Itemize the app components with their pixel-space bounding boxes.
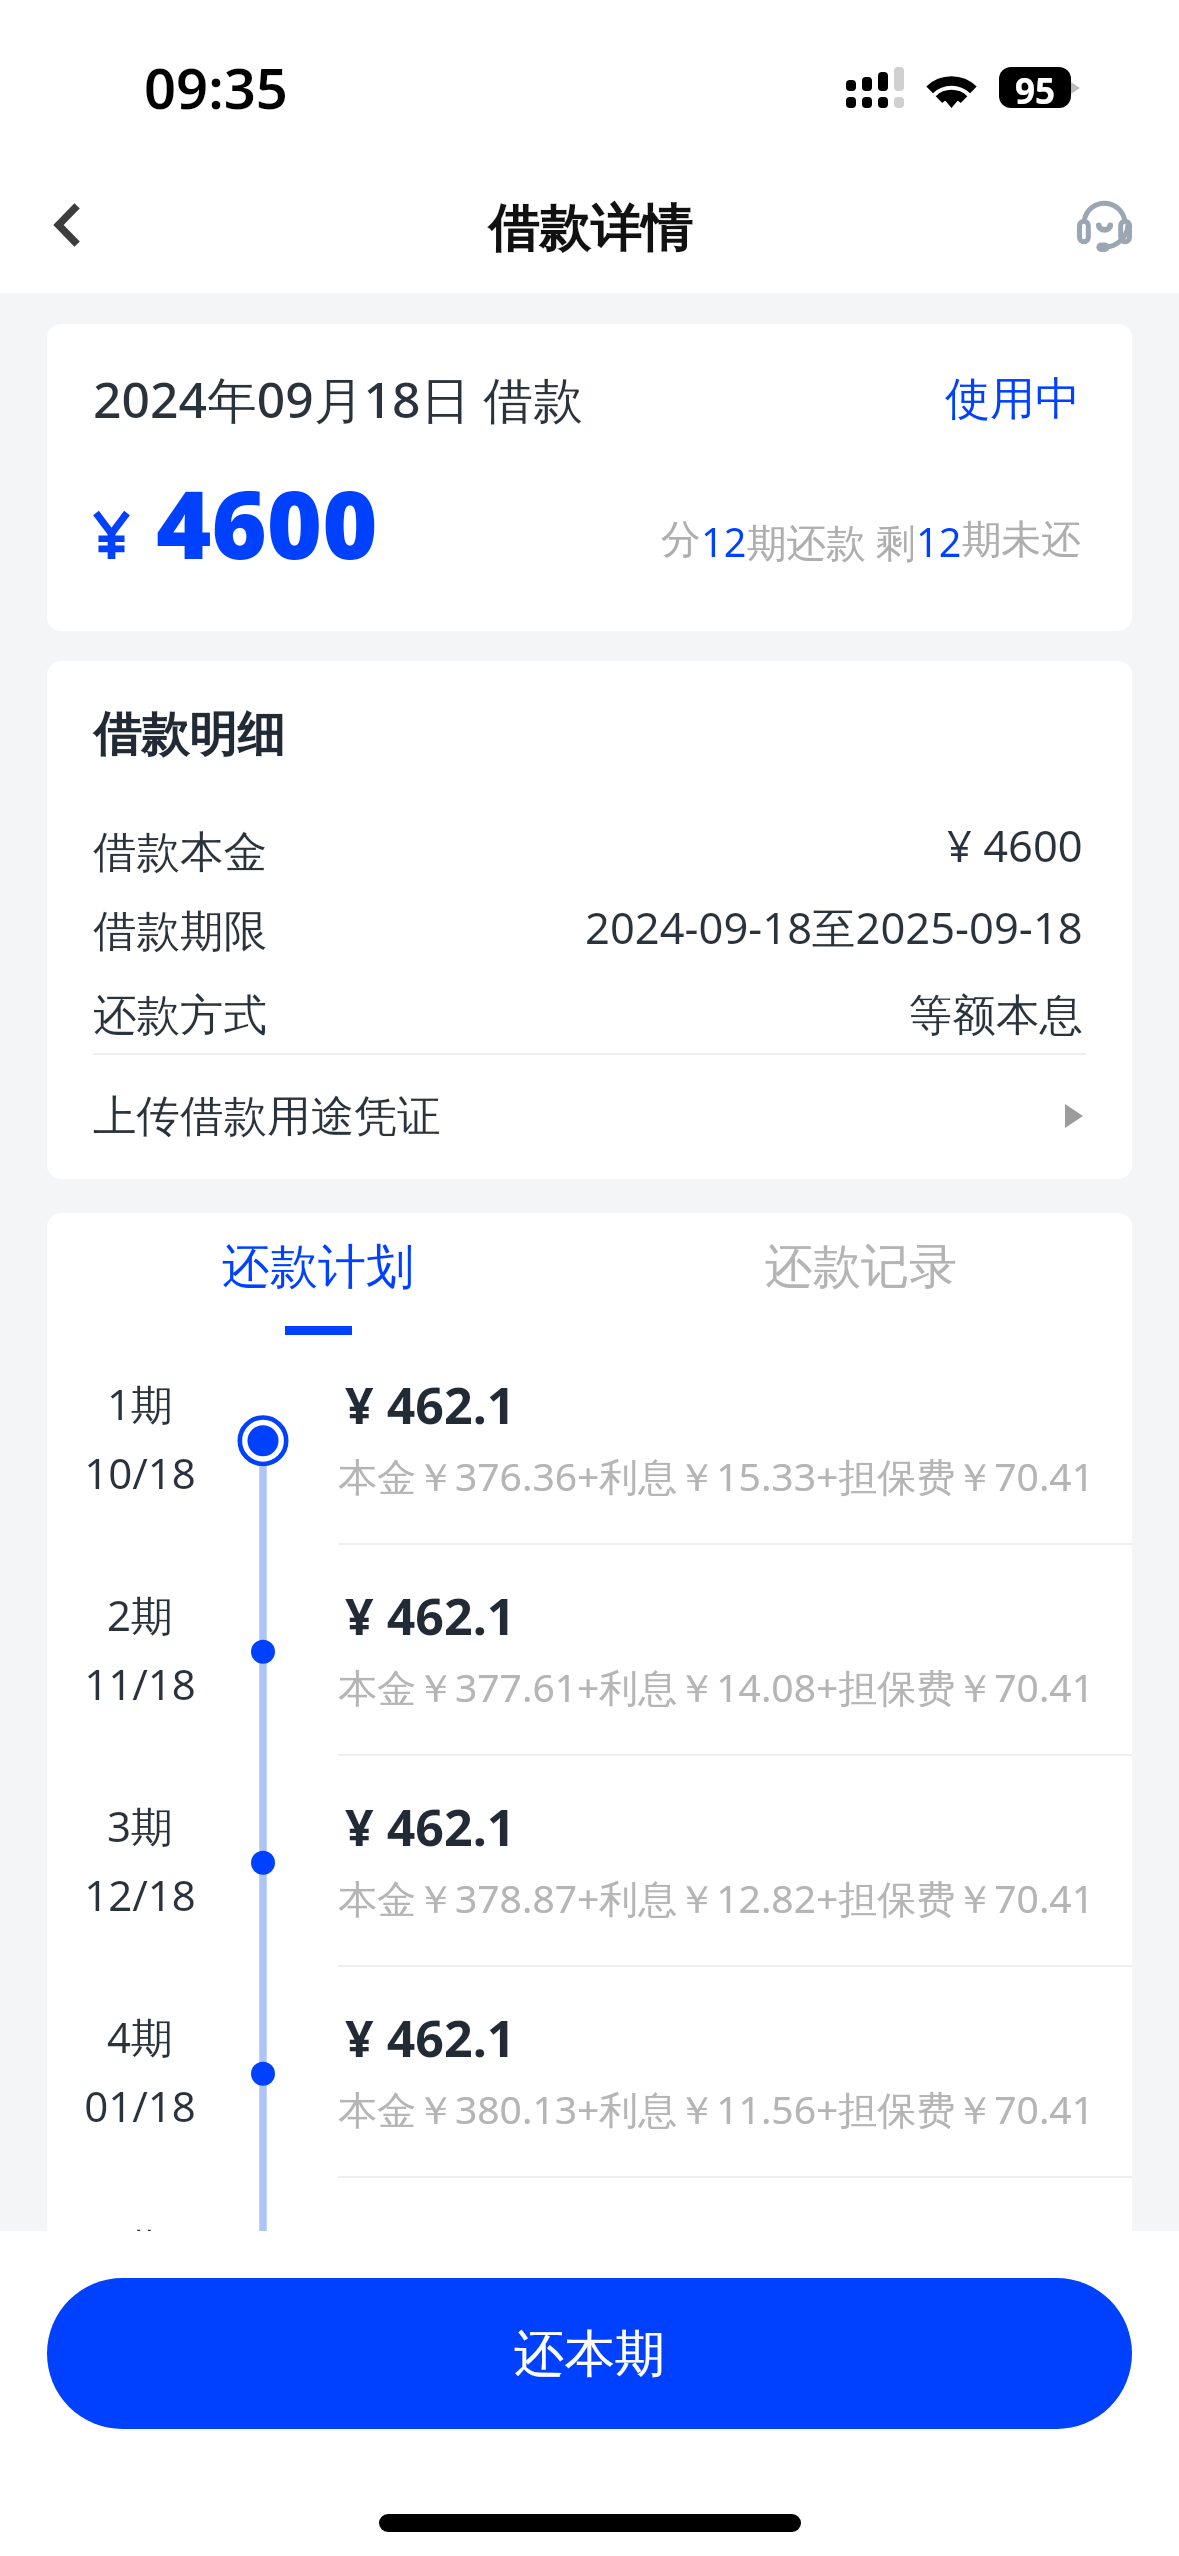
staticText: 本金￥380.13+利息￥11.56+担保费￥70.41 [338,2082,1094,2135]
staticText: 借款明细 [93,705,285,765]
button[interactable]: 2期 [47,1545,1132,1756]
button[interactable]: 还款计划 [47,1213,589,1334]
staticText: 期还款 剩 [747,515,916,569]
staticText: 本金￥381.40+利息￥10.29+担保费￥70.41 [338,2293,1094,2346]
staticText: 还本期 [514,2322,666,2385]
button[interactable]: 3期 [47,1756,1132,1967]
button[interactable]: 4期 [47,1967,1132,2178]
staticText: 期未还 [962,515,1081,565]
staticText: 01/18 [47,2077,233,2134]
staticText: 还款方式 [93,988,267,1043]
staticText: ¥ 462.1 [345,2214,516,2282]
staticText: 借款期限 [93,904,267,959]
staticText: 5期 [47,2219,233,2276]
staticText: 2024年09月18日 借款 [93,365,583,433]
button[interactable]: 还本期 [47,2278,1132,2429]
staticText: 上传借款用途凭证 [93,1089,441,1144]
staticText: 02/18 [47,2288,233,2345]
staticText: 借款本金 [93,825,267,880]
button[interactable]: Customer service [1035,156,1173,294]
staticText: 1期 [47,1375,233,1432]
staticText: 还款计划 [222,1237,414,1297]
staticText: 2024-09-18至2025-09-18 [585,897,1083,956]
button[interactable]: Back [0,156,135,294]
button[interactable]: 上传借款用途凭证 [47,1054,1132,1178]
staticText: 4600 [156,458,378,587]
staticText: 还款记录 [765,1237,957,1297]
staticText: 95 [1015,67,1056,107]
staticText: 3期 [47,1797,233,1854]
staticText: 12 [916,515,962,569]
staticText: 借款详情 [488,197,692,261]
staticText: 10/18 [47,1444,233,1501]
staticText: 12/18 [47,1866,233,1923]
staticText: ¥ 462.1 [345,1792,516,1860]
staticText: 本金￥378.87+利息￥12.82+担保费￥70.41 [338,1871,1094,1924]
staticText: ¥ 462.1 [345,2003,516,2071]
staticText: 09:35 [144,49,288,125]
staticText: ¥ 462.1 [345,1370,516,1438]
staticText: 等额本息 [909,988,1083,1043]
staticText: ¥ 4600 [947,815,1083,874]
staticText: 本金￥376.36+利息￥15.33+担保费￥70.41 [338,1449,1094,1502]
button[interactable]: 还款记录 [589,1213,1132,1334]
button[interactable]: 1期 [47,1334,1132,1545]
staticText: 2期 [47,1586,233,1643]
staticText: 本金￥377.61+利息￥14.08+担保费￥70.41 [338,1660,1094,1713]
button[interactable]: 5期 [47,2178,1132,2389]
staticText: 分 [661,515,701,565]
staticText: 11/18 [47,1655,233,1712]
staticText: ¥ 462.1 [345,1581,516,1649]
staticText: 12 [701,515,747,569]
staticText: 4期 [47,2008,233,2065]
staticText: 使用中 [945,371,1080,428]
